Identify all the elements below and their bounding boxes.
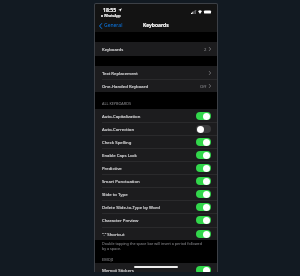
button[interactable]: Slide to Type [95, 187, 217, 200]
staticText: One-Handed Keyboard [102, 83, 149, 89]
button[interactable]: Auto-Correction [95, 122, 217, 135]
button[interactable]: Enable Caps Lock [95, 148, 217, 161]
staticText: Check Spelling [102, 139, 132, 145]
staticText: Double tapping the space bar will insert… [102, 241, 205, 251]
button[interactable]: On [196, 151, 211, 159]
button[interactable]: Off [196, 125, 211, 133]
staticText: 2 [204, 46, 207, 52]
staticText: EMOJI [102, 257, 114, 262]
button[interactable]: General [99, 22, 123, 29]
button[interactable]: Smart Punctuation [95, 174, 217, 187]
staticText: ALL KEYBOARDS [102, 101, 132, 106]
staticText: “.” Shortcut [102, 231, 125, 237]
button[interactable]: On [196, 112, 211, 120]
staticText: Keyboards [143, 22, 169, 29]
button[interactable]: On [196, 177, 211, 185]
staticText: Keyboards [102, 46, 124, 52]
button[interactable]: Predictive [95, 161, 217, 174]
button[interactable]: Character Preview [95, 213, 217, 226]
button[interactable]: Memoji Stickers [95, 263, 217, 272]
staticText: Predictive [102, 165, 122, 171]
button[interactable]: Check Spelling [95, 135, 217, 148]
staticText: Auto-Correction [102, 126, 135, 132]
staticText: Auto-Capitalization [102, 113, 141, 119]
staticText: Delete Slide-to-Type by Word [102, 204, 160, 210]
button[interactable]: On [196, 203, 211, 211]
staticText: WhatsApp [104, 13, 121, 18]
button[interactable]: Auto-Capitalization [95, 109, 217, 122]
button[interactable]: Delete Slide-to-Type by Word [95, 200, 217, 213]
button[interactable]: On [196, 190, 211, 198]
staticText: Text Replacement [102, 70, 138, 76]
staticText: Memoji Stickers [102, 267, 134, 272]
staticText: Enable Caps Lock [102, 152, 137, 158]
button[interactable]: On [196, 266, 211, 272]
button[interactable]: One-Handed Keyboard [95, 79, 217, 92]
staticText: General [104, 22, 123, 29]
button[interactable]: On [196, 216, 211, 224]
staticText: Slide to Type [102, 191, 128, 197]
staticText: Character Preview [102, 217, 139, 223]
staticText: Off [200, 83, 207, 89]
button[interactable]: On [196, 230, 211, 238]
button[interactable]: “.” Shortcut [95, 227, 217, 240]
button[interactable]: On [196, 138, 211, 146]
button[interactable]: Keyboards [95, 42, 217, 56]
button[interactable]: On [196, 164, 211, 172]
button[interactable]: Text Replacement [95, 66, 217, 79]
staticText: Smart Punctuation [102, 178, 140, 184]
staticText: 18:55 [103, 6, 117, 13]
